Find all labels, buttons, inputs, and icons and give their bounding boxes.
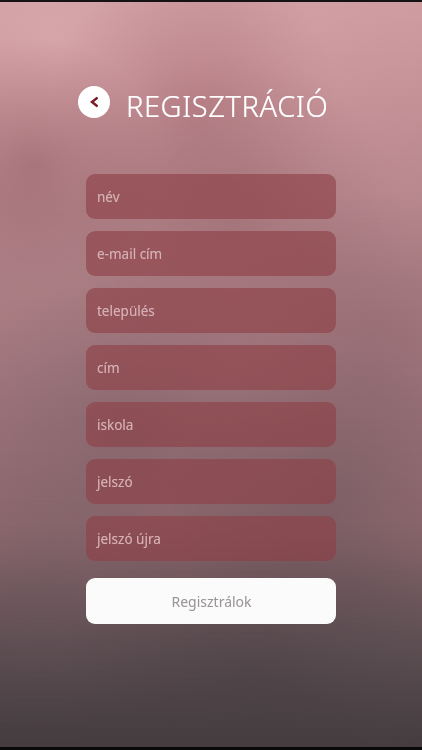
button[interactable]: e-mail cím bbox=[86, 231, 336, 276]
staticText: jelszó újra bbox=[97, 530, 161, 548]
staticText: név bbox=[97, 188, 120, 206]
button[interactable]: iskola bbox=[86, 402, 336, 447]
staticText: jelszó bbox=[97, 473, 133, 491]
staticText: Regisztrálok bbox=[171, 592, 252, 611]
button[interactable]: Regisztrálok bbox=[86, 578, 336, 624]
button[interactable]: település bbox=[86, 288, 336, 333]
staticText: REGISZTRÁCIÓ bbox=[126, 86, 329, 118]
staticText: iskola bbox=[97, 416, 134, 434]
button[interactable]: Back bbox=[78, 86, 110, 118]
button[interactable]: cím bbox=[86, 345, 336, 390]
button[interactable]: jelszó újra bbox=[86, 516, 336, 561]
button[interactable]: név bbox=[86, 174, 336, 219]
button[interactable]: jelszó bbox=[86, 459, 336, 504]
staticText: e-mail cím bbox=[97, 245, 163, 263]
staticText: cím bbox=[97, 359, 120, 377]
staticText: település bbox=[97, 302, 155, 320]
